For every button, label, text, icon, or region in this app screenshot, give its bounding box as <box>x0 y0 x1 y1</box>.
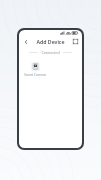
button[interactable]: Smart Camera <box>24 61 46 78</box>
staticText: Add Device <box>36 38 65 45</box>
button[interactable]: Scan QR code <box>72 38 79 45</box>
staticText: Connected <box>41 50 60 55</box>
staticText: Smart Camera <box>24 73 46 77</box>
button[interactable]: Back <box>22 38 29 45</box>
